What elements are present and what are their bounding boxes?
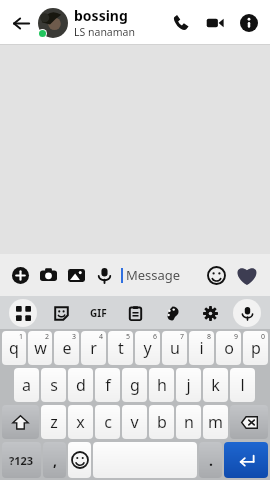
staticText: 3 xyxy=(72,332,77,342)
staticText: z xyxy=(50,411,58,433)
button[interactable]: Video call xyxy=(200,8,230,38)
button[interactable]: l xyxy=(230,368,255,402)
staticText: m xyxy=(208,411,223,433)
button[interactable]: Space xyxy=(93,442,197,478)
button[interactable]: Shift xyxy=(2,405,39,439)
staticText: GIF xyxy=(90,306,107,320)
staticText: u xyxy=(170,337,180,359)
staticText: q xyxy=(9,337,19,359)
button[interactable]: e xyxy=(54,331,79,365)
staticText: b xyxy=(157,411,167,433)
staticText: . xyxy=(209,451,213,470)
button[interactable]: y xyxy=(135,331,160,365)
button[interactable]: . xyxy=(199,442,222,478)
staticText: d xyxy=(76,374,86,396)
staticText: p xyxy=(251,337,261,359)
button[interactable]: Add xyxy=(6,261,34,289)
button[interactable]: Message xyxy=(121,261,202,289)
staticText: 8 xyxy=(207,332,212,342)
button[interactable]: a xyxy=(14,368,39,402)
button[interactable]: Emoji xyxy=(202,261,230,289)
staticText: l xyxy=(240,374,245,396)
button[interactable]: s xyxy=(41,368,66,402)
button[interactable]: b xyxy=(149,405,174,439)
staticText: r xyxy=(90,337,97,359)
button[interactable]: Themes xyxy=(158,299,186,327)
button[interactable]: r xyxy=(81,331,106,365)
staticText: k xyxy=(211,374,220,396)
staticText: LS nanaman xyxy=(74,25,135,39)
button[interactable]: Stickers xyxy=(47,299,75,327)
button[interactable]: g xyxy=(122,368,147,402)
button[interactable]: Info xyxy=(234,8,264,38)
staticText: e xyxy=(62,337,72,359)
staticText: i xyxy=(199,337,204,359)
staticText: 6 xyxy=(153,332,158,342)
button[interactable]: w xyxy=(28,331,52,365)
staticText: h xyxy=(157,374,167,396)
button[interactable]: c xyxy=(95,405,120,439)
staticText: , xyxy=(53,451,57,470)
button[interactable]: i xyxy=(189,331,214,365)
button[interactable]: Back xyxy=(6,8,36,38)
button[interactable]: z xyxy=(41,405,66,439)
button[interactable]: bossing xyxy=(74,6,166,39)
button[interactable]: d xyxy=(68,368,93,402)
button[interactable]: t xyxy=(108,331,133,365)
staticText: 1 xyxy=(19,332,24,342)
staticText: f xyxy=(105,374,111,396)
staticText: j xyxy=(186,374,191,396)
staticText: ?123 xyxy=(9,453,34,468)
staticText: bossing xyxy=(74,6,128,25)
button[interactable]: Enter xyxy=(224,442,268,478)
button[interactable]: h xyxy=(149,368,174,402)
button[interactable]: Settings xyxy=(196,299,224,327)
staticText: 0 xyxy=(261,332,266,342)
button[interactable]: q xyxy=(2,331,26,365)
staticText: g xyxy=(130,374,140,396)
staticText: a xyxy=(22,374,31,396)
button[interactable]: Gallery xyxy=(62,261,90,289)
staticText: c xyxy=(104,411,112,433)
button[interactable]: u xyxy=(162,331,187,365)
staticText: 2 xyxy=(45,332,50,342)
staticText: o xyxy=(224,337,234,359)
button[interactable]: k xyxy=(203,368,228,402)
button[interactable]: Apps xyxy=(9,299,37,327)
staticText: w xyxy=(34,337,47,359)
button[interactable]: ?123 xyxy=(2,442,41,478)
button[interactable]: Voice message xyxy=(90,261,118,289)
button[interactable]: Call xyxy=(166,8,196,38)
button[interactable]: x xyxy=(68,405,93,439)
button[interactable]: Send like xyxy=(230,258,264,292)
button[interactable]: , xyxy=(43,442,66,478)
button[interactable]: Backspace xyxy=(230,405,268,439)
staticText: v xyxy=(130,411,139,433)
button[interactable]: GIF xyxy=(84,299,112,327)
button[interactable]: Camera xyxy=(34,261,62,289)
staticText: 9 xyxy=(234,332,239,342)
button[interactable]: v xyxy=(122,405,147,439)
staticText: 5 xyxy=(126,332,131,342)
staticText: 4 xyxy=(99,332,104,342)
staticText: 7 xyxy=(180,332,185,342)
button[interactable]: o xyxy=(216,331,241,365)
button[interactable]: Clipboard xyxy=(121,299,149,327)
staticText: s xyxy=(50,374,58,396)
staticText: Message xyxy=(126,266,181,284)
staticText: y xyxy=(143,337,152,359)
button[interactable]: Emoji xyxy=(68,442,91,478)
button[interactable]: p xyxy=(243,331,268,365)
staticText: n xyxy=(184,411,194,433)
button[interactable]: j xyxy=(176,368,201,402)
staticText: t xyxy=(118,337,124,359)
button[interactable]: Voice input xyxy=(233,299,261,327)
button[interactable]: f xyxy=(95,368,120,402)
staticText: x xyxy=(76,411,85,433)
button[interactable]: n xyxy=(176,405,201,439)
button[interactable]: m xyxy=(203,405,228,439)
